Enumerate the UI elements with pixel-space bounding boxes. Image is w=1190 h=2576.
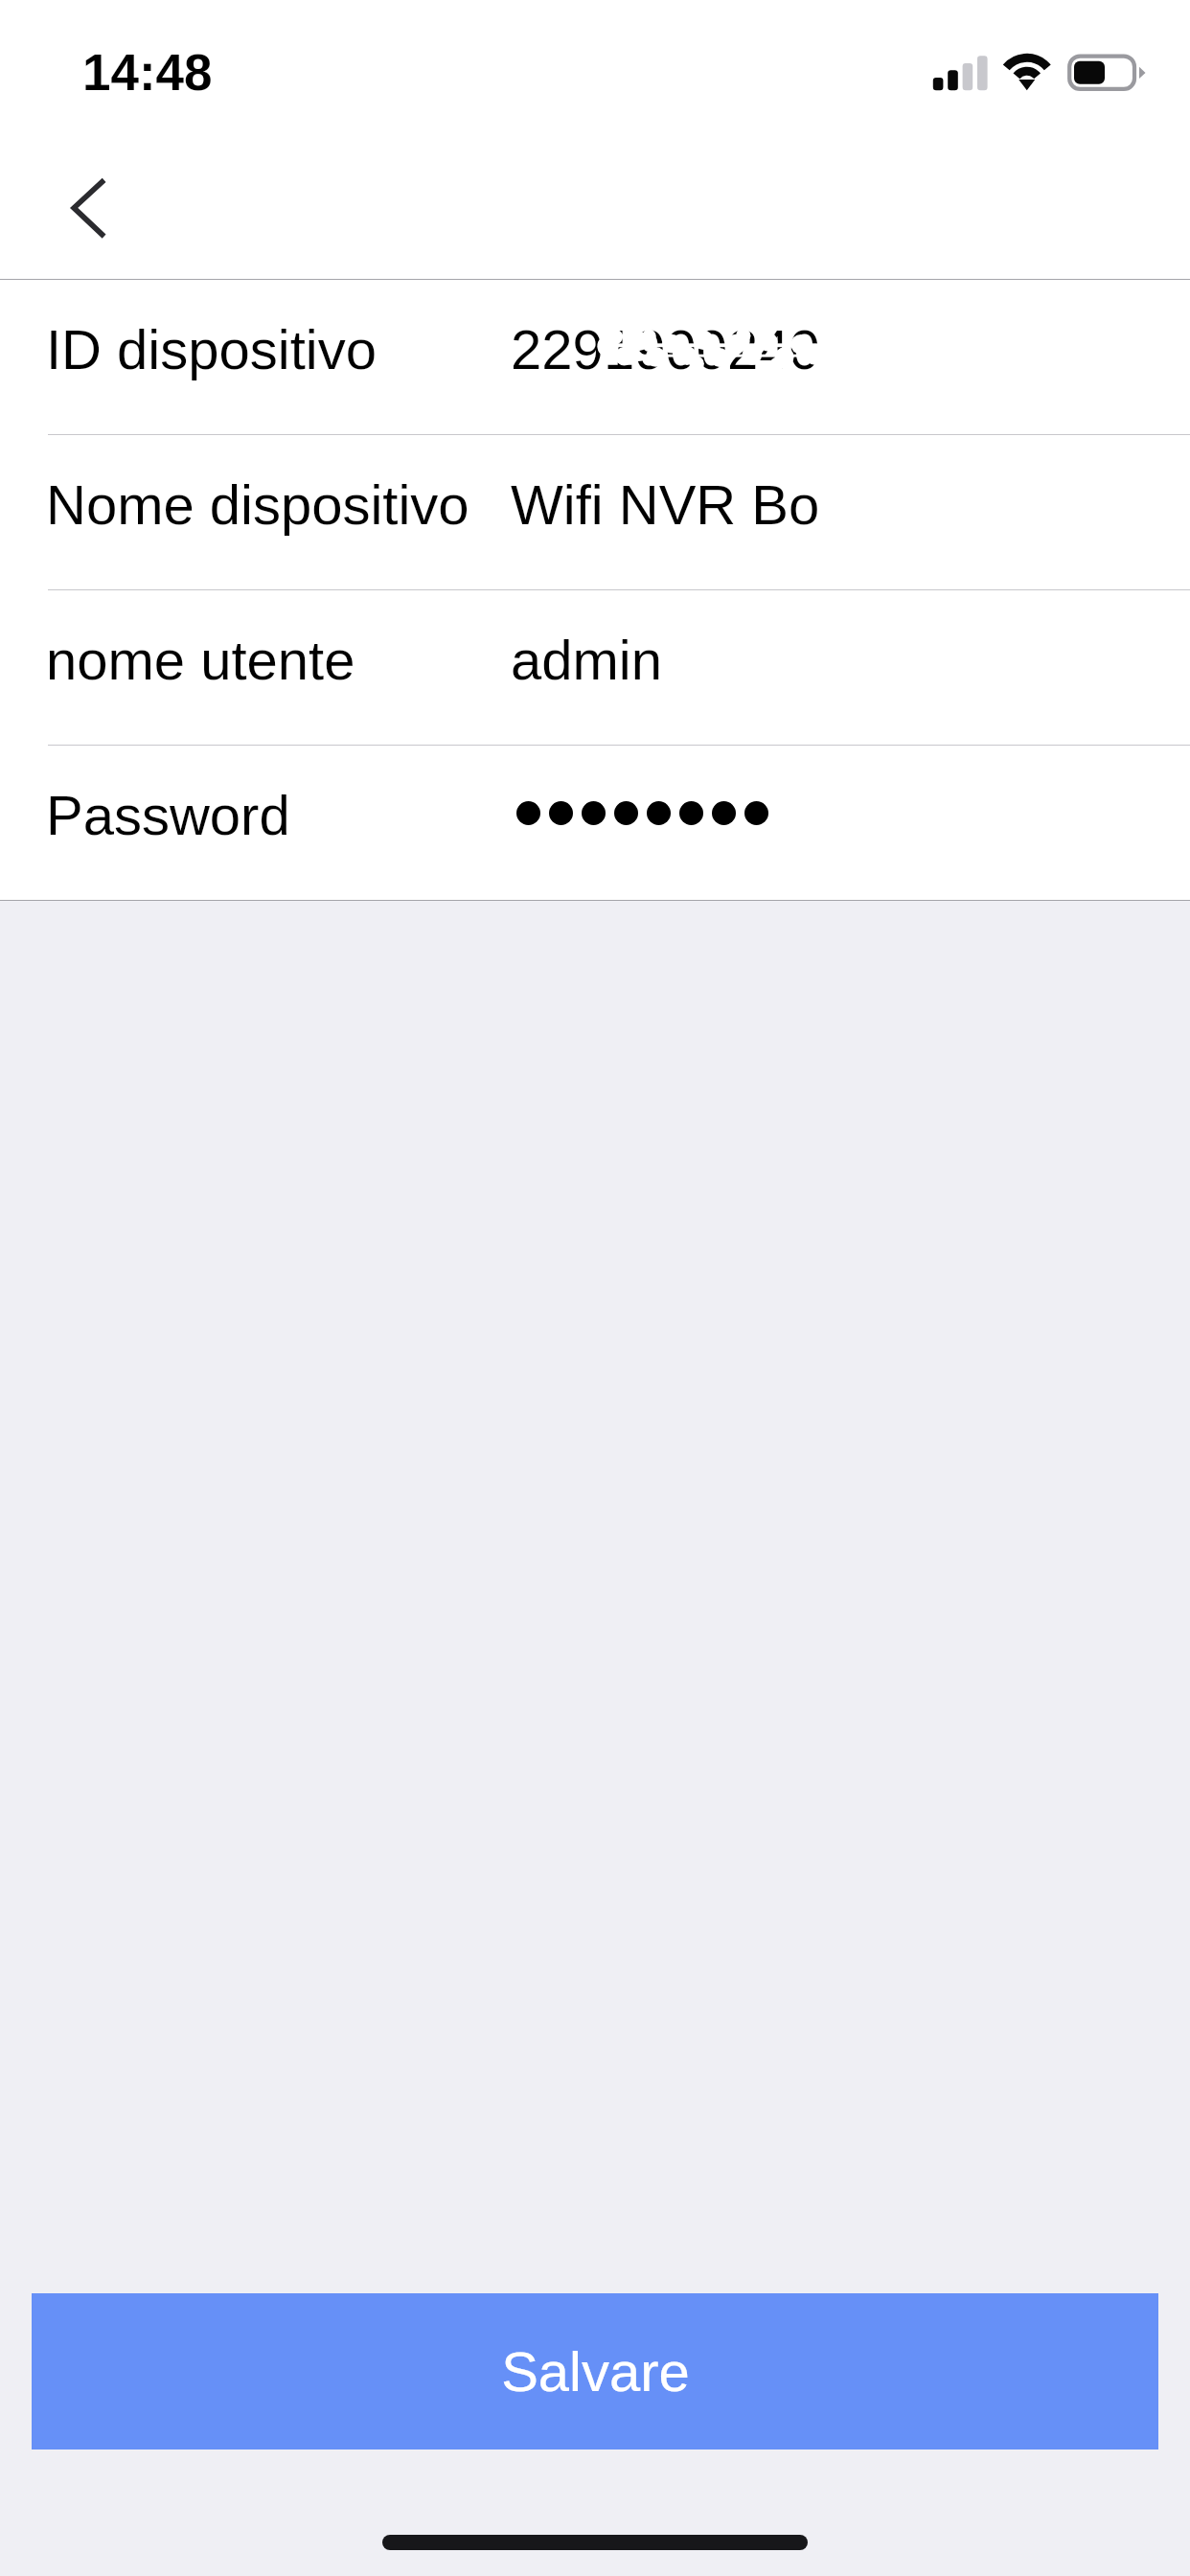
staticText: 229 xyxy=(511,318,604,380)
staticText: nome utente xyxy=(46,629,355,691)
staticText: Salvare xyxy=(501,2340,690,2403)
button[interactable]: Back xyxy=(40,162,140,269)
button[interactable]: nome utente xyxy=(0,590,1190,745)
staticText: 14:48 xyxy=(82,44,213,101)
staticText: admin xyxy=(511,629,662,691)
button[interactable]: Nome dispositivo xyxy=(0,435,1190,589)
staticText: Nome dispositivo xyxy=(46,473,469,536)
staticText: Password xyxy=(46,784,290,846)
staticText: 1900240 xyxy=(604,318,820,380)
staticText: Wifi NVR Bo xyxy=(511,473,820,536)
button[interactable]: Password xyxy=(0,746,1190,900)
staticText: ID dispositivo xyxy=(46,318,377,380)
button[interactable]: ID dispositivo xyxy=(0,280,1190,434)
button[interactable]: Salvare xyxy=(32,2293,1158,2449)
